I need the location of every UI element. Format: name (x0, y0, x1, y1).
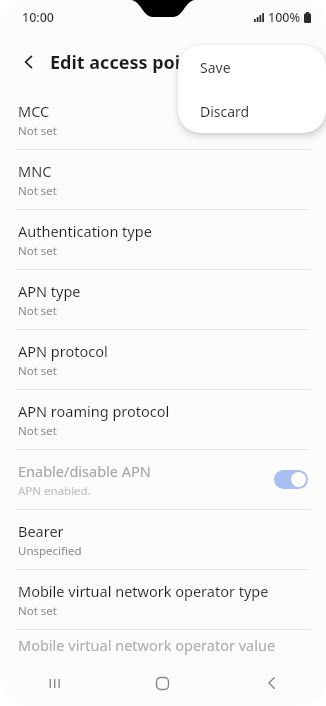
button[interactable]: Recent apps (0, 660, 108, 706)
button[interactable]: Home (108, 660, 217, 706)
staticText: APN enabled. (18, 483, 91, 499)
button[interactable]: APN protocol (0, 330, 326, 389)
button[interactable]: Mobile virtual network operator value (0, 630, 326, 660)
staticText: Mobile virtual network operator type (18, 581, 269, 601)
button[interactable]: Mobile virtual network operator type (0, 570, 326, 629)
staticText: Not set (18, 123, 57, 139)
button[interactable]: Enable/disable APN (0, 450, 326, 509)
staticText: Unspecified (18, 543, 82, 559)
staticText: Not set (18, 243, 57, 259)
button[interactable]: Authentication type (0, 210, 326, 269)
staticText: APN roaming protocol (18, 401, 170, 421)
button[interactable]: Back (217, 660, 326, 706)
button[interactable]: MNC (0, 150, 326, 209)
button[interactable]: Discard (178, 89, 326, 133)
button[interactable]: MCC (0, 90, 326, 149)
staticText: Enable/disable APN (18, 461, 151, 481)
button[interactable]: Save (178, 45, 326, 89)
button[interactable]: Enable or disable APN (274, 470, 308, 489)
staticText: Authentication type (18, 221, 152, 241)
staticText: 100% (268, 9, 301, 26)
staticText: Not set (18, 183, 57, 199)
button[interactable]: APN roaming protocol (0, 390, 326, 449)
button[interactable]: Bearer (0, 510, 326, 569)
staticText: Not set (18, 363, 57, 379)
staticText: 10:00 (22, 9, 55, 26)
staticText: Not set (18, 303, 57, 319)
staticText: MCC (18, 101, 50, 121)
staticText: Not set (18, 603, 57, 619)
button[interactable]: APN type (0, 270, 326, 329)
staticText: APN type (18, 281, 81, 301)
staticText: Discard (200, 102, 250, 121)
staticText: Mobile virtual network operator value (18, 635, 276, 655)
staticText: Save (200, 58, 231, 77)
staticText: MNC (18, 161, 52, 181)
button[interactable]: Back (12, 45, 46, 79)
staticText: Not set (18, 423, 57, 439)
staticText: Edit access point (50, 50, 200, 75)
staticText: APN protocol (18, 341, 108, 361)
staticText: Bearer (18, 521, 64, 541)
